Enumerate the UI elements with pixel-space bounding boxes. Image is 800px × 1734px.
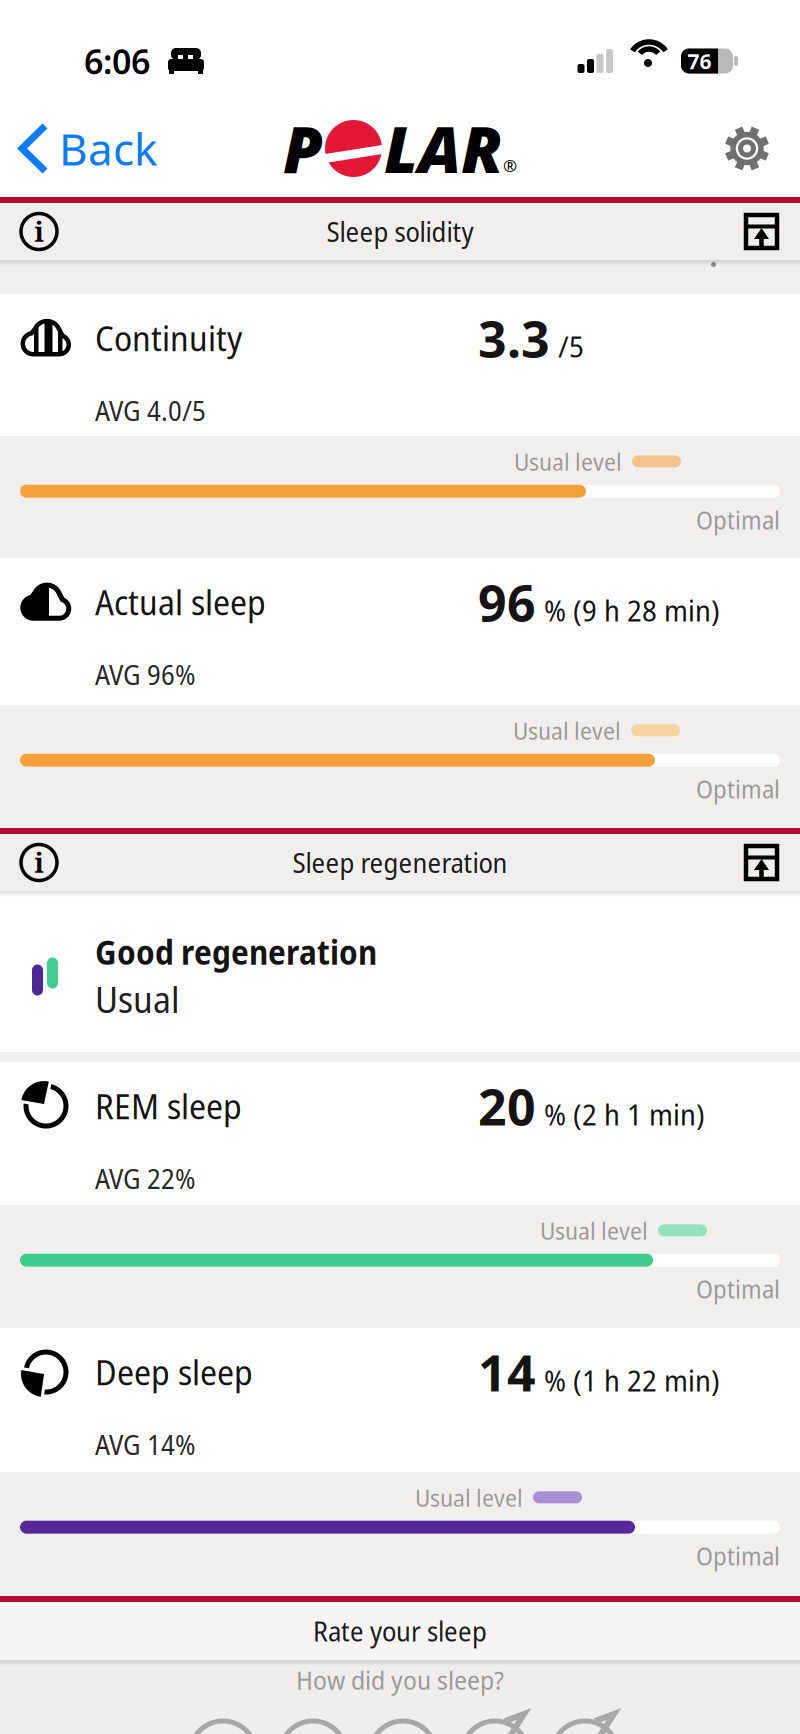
button[interactable]: i: [0, 213, 57, 249]
staticText: Optimal: [696, 1539, 780, 1573]
staticText: Rate your sleep: [313, 1613, 487, 1649]
button[interactable]: [370, 1721, 436, 1734]
button[interactable]: [724, 125, 800, 171]
staticText: 76: [687, 47, 711, 75]
staticText: % (2 h 1 min): [544, 1094, 705, 1134]
staticText: /5: [558, 326, 584, 366]
staticText: AVG 22%: [95, 1160, 195, 1197]
staticText: Deep sleep: [95, 1349, 253, 1395]
staticText: i: [34, 213, 43, 250]
staticText: How did you sleep?: [296, 1662, 504, 1697]
staticText: 6:06: [84, 38, 150, 84]
staticText: ®: [503, 154, 517, 177]
staticText: P: [283, 105, 323, 192]
button[interactable]: [746, 846, 800, 879]
staticText: 20: [478, 1072, 536, 1140]
button[interactable]: Back: [0, 118, 157, 178]
staticText: 3.3: [478, 304, 550, 372]
staticText: 96: [478, 568, 536, 636]
staticText: Usual: [95, 974, 180, 1023]
staticText: 14: [478, 1338, 536, 1406]
staticText: Usual level: [415, 1481, 523, 1514]
staticText: Usual level: [513, 714, 621, 747]
staticText: Sleep solidity: [326, 213, 473, 250]
staticText: % (1 h 22 min): [544, 1360, 720, 1400]
staticText: Optimal: [696, 1272, 780, 1306]
button[interactable]: [746, 215, 800, 248]
button[interactable]: [280, 1721, 346, 1734]
staticText: Optimal: [696, 503, 780, 537]
button[interactable]: [462, 1721, 528, 1734]
staticText: Optimal: [696, 772, 780, 806]
staticText: Sleep regeneration: [292, 844, 507, 881]
staticText: % (9 h 28 min): [544, 590, 720, 630]
staticText: Actual sleep: [95, 579, 266, 625]
staticText: AVG 14%: [95, 1426, 195, 1463]
button[interactable]: [190, 1721, 256, 1734]
staticText: Continuity: [95, 315, 242, 361]
staticText: i: [34, 844, 43, 881]
staticText: Back: [59, 118, 157, 178]
staticText: AVG 96%: [95, 656, 195, 693]
staticText: REM sleep: [95, 1083, 242, 1129]
staticText: Usual level: [514, 445, 622, 478]
button[interactable]: [552, 1721, 618, 1734]
button[interactable]: i: [0, 844, 57, 880]
staticText: Good regeneration: [95, 929, 377, 974]
staticText: AVG 4.0/5: [95, 392, 206, 429]
staticText: Usual level: [540, 1214, 648, 1247]
staticText: LAR: [384, 105, 503, 192]
